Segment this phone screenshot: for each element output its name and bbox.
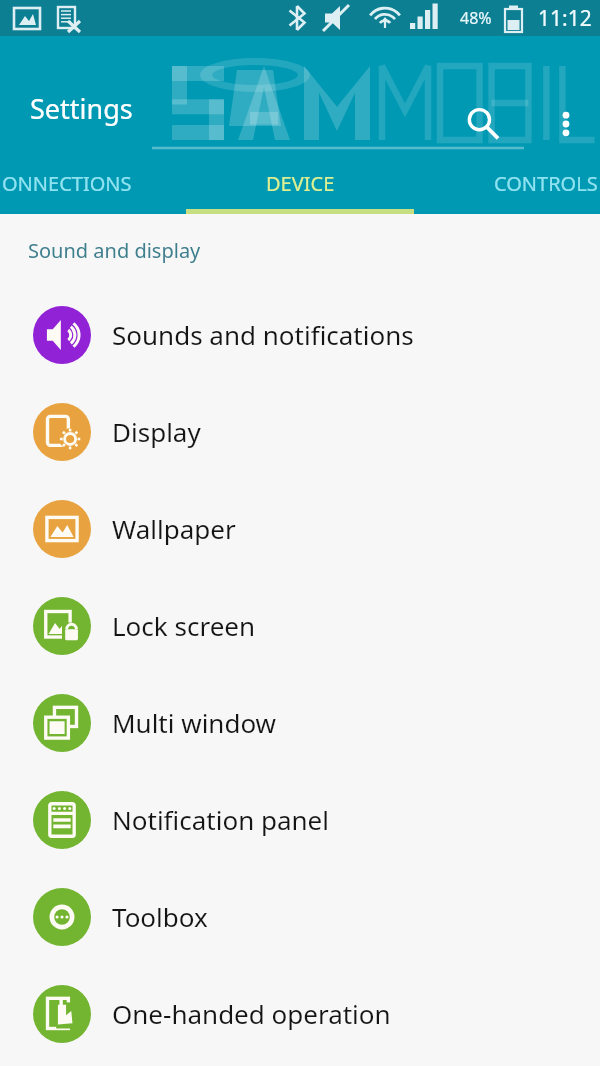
staticText: Sounds and notifications [112,317,414,352]
staticText: Multi window [112,705,277,740]
staticText: Sound and display [28,237,201,264]
button[interactable]: More options [538,96,594,152]
button[interactable]: Display [0,383,600,480]
staticText: One-handed operation [112,996,391,1031]
button[interactable]: Multi window [0,674,600,771]
staticText: Lock screen [112,608,256,643]
staticText: 48% [460,7,492,29]
staticText: ONNECTIONS [2,170,132,197]
button[interactable]: Toolbox [0,868,600,965]
staticText: Toolbox [112,899,208,934]
staticText: CONTROLS [494,170,598,197]
staticText: Display [112,414,201,449]
button[interactable]: Wallpaper [0,480,600,577]
button[interactable]: Lock screen [0,577,600,674]
button[interactable]: CONTROLS [400,152,600,214]
staticText: Notification panel [112,802,329,837]
staticText: Wallpaper [112,511,236,546]
staticText: 11:12 [538,4,592,33]
button[interactable]: One-handed operation [0,965,600,1062]
button[interactable]: Search [455,96,511,152]
staticText: Settings [30,90,133,127]
button[interactable]: DEVICE [200,152,400,214]
button[interactable]: Sounds and notifications [0,286,600,383]
button[interactable]: ONNECTIONS [0,152,200,214]
button[interactable]: Notification panel [0,771,600,868]
staticText: DEVICE [266,170,335,197]
